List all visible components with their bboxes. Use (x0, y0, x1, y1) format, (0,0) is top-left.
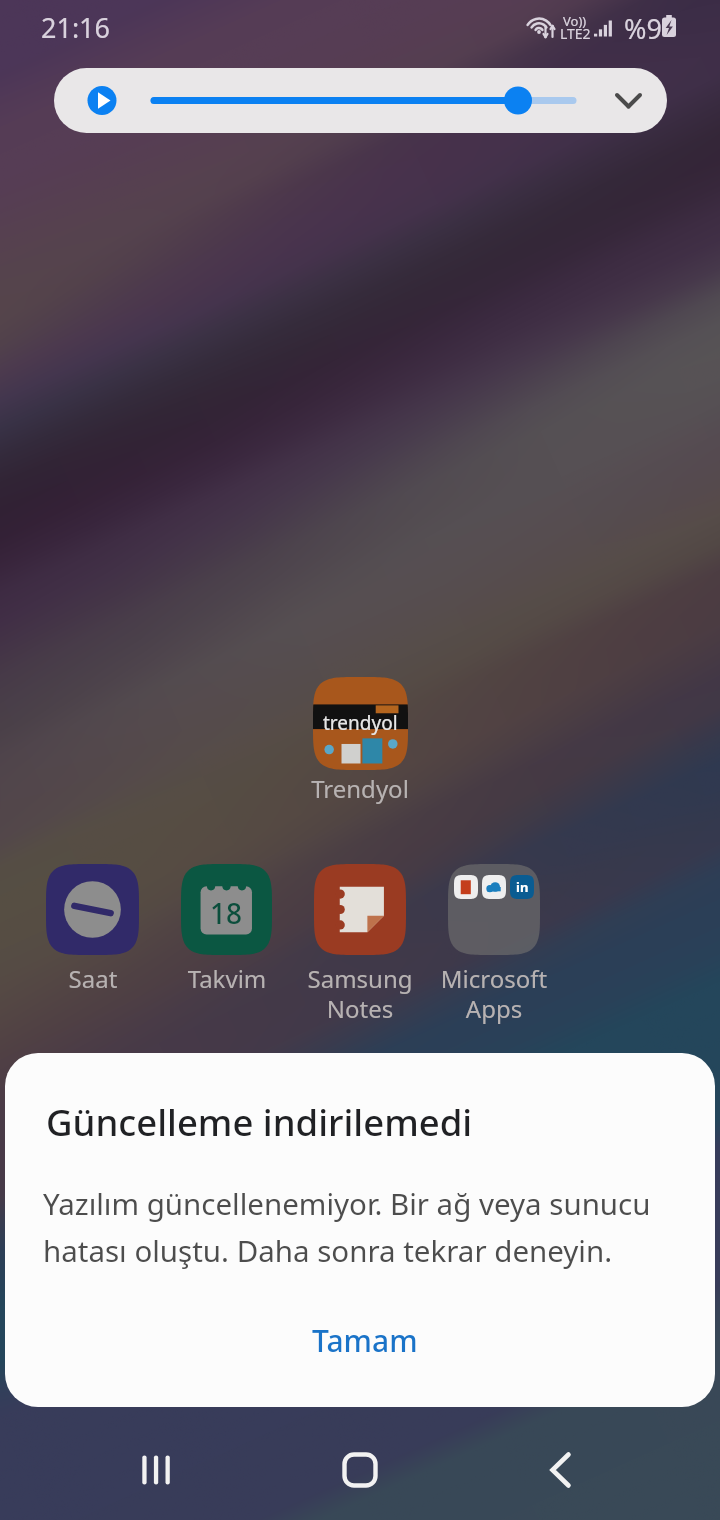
staticText: Takvim (137, 962, 317, 995)
button[interactable]: Home (300, 1420, 420, 1520)
button[interactable]: in (448, 864, 540, 955)
staticText: Vo)) (563, 12, 587, 30)
button[interactable]: Recent apps (96, 1420, 216, 1520)
staticText: Yazılım güncellenemiyor. Bir ağ veya sun… (43, 1183, 683, 1271)
staticText: LTE2 (560, 24, 591, 43)
staticText: 21:16 (41, 9, 111, 46)
button[interactable]: 18 (181, 864, 272, 955)
staticText: Saat (3, 962, 183, 995)
staticText: Samsung Notes (270, 962, 450, 1025)
button[interactable]: trendyol (313, 677, 408, 770)
staticText: in (516, 878, 529, 896)
button[interactable] (314, 864, 406, 955)
staticText: Trendyol (270, 772, 450, 805)
button[interactable] (54, 68, 667, 133)
staticText: Güncelleme indirilemedi (46, 1097, 473, 1147)
button[interactable]: Tamam (279, 1311, 451, 1369)
staticText: Microsoft Apps (404, 962, 584, 1025)
button[interactable]: Back (500, 1420, 620, 1520)
button[interactable] (46, 864, 139, 955)
staticText: 18 (210, 894, 243, 932)
staticText: Tamam (312, 1320, 418, 1361)
staticText: %9 (624, 10, 662, 47)
staticText: trendyol (323, 710, 398, 736)
